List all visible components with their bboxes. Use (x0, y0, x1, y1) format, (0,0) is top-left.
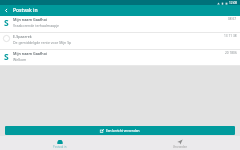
staticText: Vraaborende terhaalmaapje (13, 23, 60, 28)
staticText: 13 11 38 (224, 34, 237, 38)
staticText: Postvak in (13, 7, 38, 14)
button[interactable]: Postvak in (0, 139, 120, 150)
button[interactable]: S (0, 50, 240, 66)
staticText: E-Spaarrek (13, 34, 32, 39)
button[interactable]: S (0, 16, 240, 33)
staticText: S (4, 17, 9, 26)
button[interactable]: Back (0, 5, 13, 16)
staticText: 08:57 (228, 17, 237, 21)
staticText: De gemiddelgde rente voor Mijn Sp (13, 40, 72, 45)
staticText: Mijn naam Gaafhoi (13, 51, 48, 56)
button[interactable]: Verzonden (120, 139, 240, 150)
button[interactable]: E-Spaarrek (0, 33, 240, 50)
staticText: Verzonden (173, 145, 188, 149)
staticText: 12:08 (229, 1, 238, 5)
staticText: 20 1806 (225, 51, 237, 55)
staticText: S (4, 51, 9, 60)
staticText: Mijn naam Gaafhoi (13, 17, 48, 22)
staticText: Een bericht verzenden (106, 129, 140, 133)
button[interactable]: Een bericht verzenden (5, 126, 235, 135)
staticText: Welkom (13, 57, 27, 62)
staticText: Postvak in (53, 145, 67, 149)
